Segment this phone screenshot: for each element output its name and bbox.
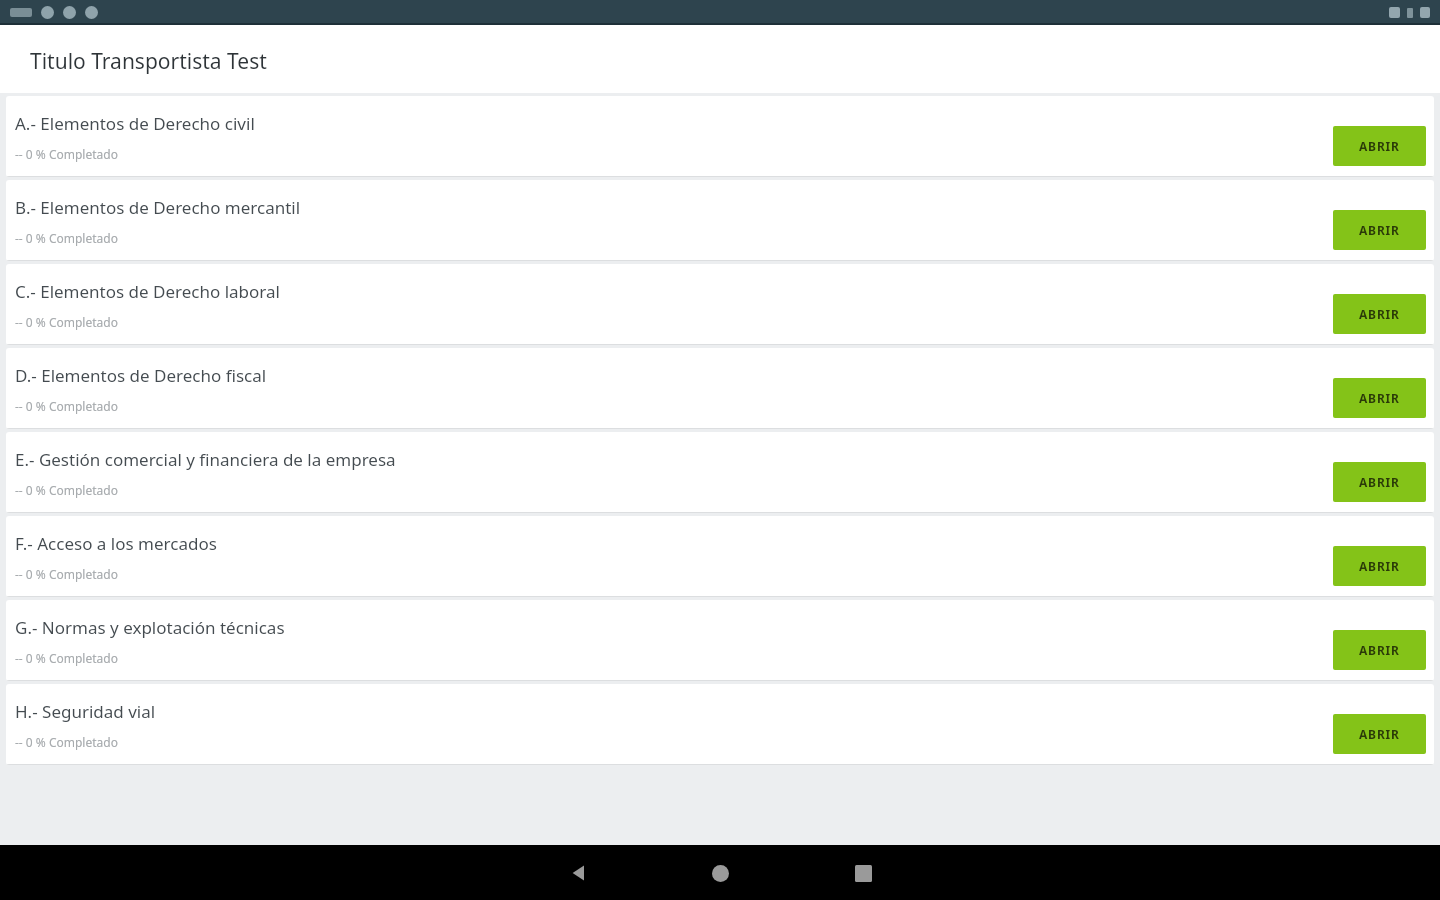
staticText: ABRIR — [1359, 726, 1400, 742]
button[interactable]: Back — [555, 849, 603, 897]
button[interactable]: H.- Seguridad vial — [6, 684, 1434, 765]
button[interactable]: ABRIR — [1333, 714, 1426, 754]
button[interactable]: A.- Elementos de Derecho civil — [6, 96, 1434, 177]
button[interactable]: D.- Elementos de Derecho fiscal — [6, 348, 1434, 429]
staticText: G.- Normas y explotación técnicas — [15, 616, 285, 639]
button[interactable]: G.- Normas y explotación técnicas — [6, 600, 1434, 681]
button[interactable]: ABRIR — [1333, 378, 1426, 418]
staticText: -- 0 % Completado — [15, 566, 118, 582]
staticText: ABRIR — [1359, 558, 1400, 574]
staticText: -- 0 % Completado — [15, 482, 118, 498]
button[interactable]: B.- Elementos de Derecho mercantil — [6, 180, 1434, 261]
button[interactable]: Recent apps — [839, 849, 887, 897]
button[interactable]: ABRIR — [1333, 630, 1426, 670]
staticText: -- 0 % Completado — [15, 734, 118, 750]
button[interactable]: ABRIR — [1333, 210, 1426, 250]
staticText: -- 0 % Completado — [15, 314, 118, 330]
staticText: E.- Gestión comercial y financiera de la… — [15, 448, 396, 471]
staticText: D.- Elementos de Derecho fiscal — [15, 364, 267, 387]
button[interactable]: ABRIR — [1333, 462, 1426, 502]
staticText: -- 0 % Completado — [15, 230, 118, 246]
staticText: -- 0 % Completado — [15, 146, 118, 162]
staticText: ABRIR — [1359, 390, 1400, 406]
staticText: B.- Elementos de Derecho mercantil — [15, 196, 301, 219]
button[interactable]: E.- Gestión comercial y financiera de la… — [6, 432, 1434, 513]
button[interactable]: F.- Acceso a los mercados — [6, 516, 1434, 597]
button[interactable]: C.- Elementos de Derecho laboral — [6, 264, 1434, 345]
staticText: H.- Seguridad vial — [15, 700, 156, 723]
staticText: ABRIR — [1359, 138, 1400, 154]
staticText: ABRIR — [1359, 222, 1400, 238]
staticText: -- 0 % Completado — [15, 650, 118, 666]
button[interactable]: Home — [696, 849, 744, 897]
staticText: F.- Acceso a los mercados — [15, 532, 217, 555]
staticText: Titulo Transportista Test — [30, 47, 267, 76]
staticText: ABRIR — [1359, 306, 1400, 322]
button[interactable]: ABRIR — [1333, 546, 1426, 586]
button[interactable]: ABRIR — [1333, 126, 1426, 166]
staticText: C.- Elementos de Derecho laboral — [15, 280, 280, 303]
staticText: A.- Elementos de Derecho civil — [15, 112, 255, 135]
staticText: ABRIR — [1359, 642, 1400, 658]
staticText: -- 0 % Completado — [15, 398, 118, 414]
button[interactable]: ABRIR — [1333, 294, 1426, 334]
staticText: ABRIR — [1359, 474, 1400, 490]
